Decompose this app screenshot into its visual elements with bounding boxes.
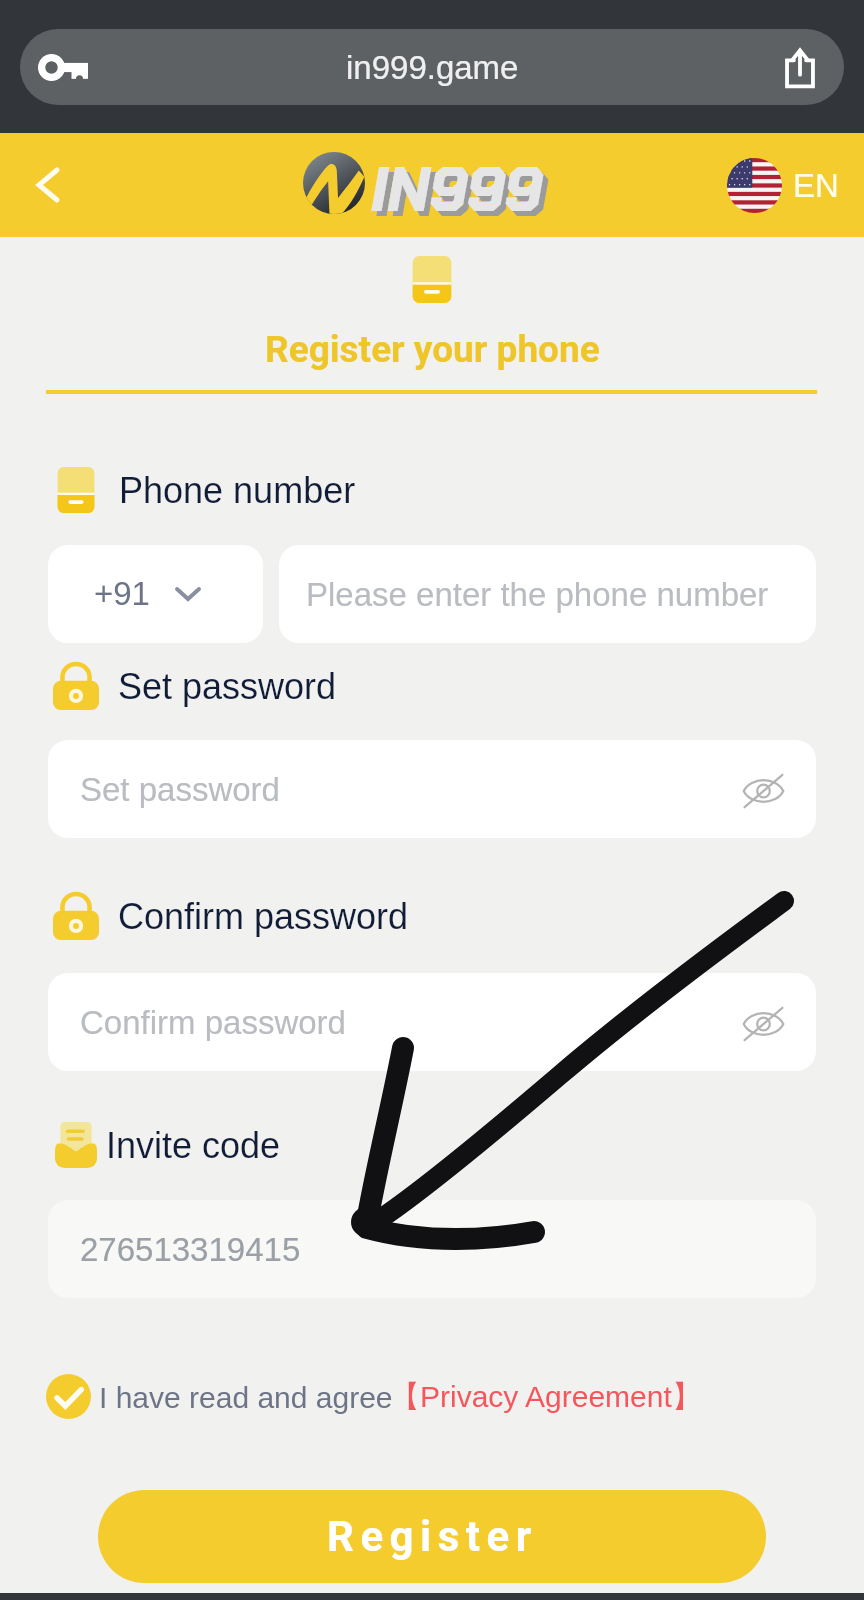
button[interactable]: Show password — [734, 995, 792, 1053]
button[interactable]: Please enter the phone number — [279, 545, 816, 643]
staticText: Please enter the phone number — [306, 576, 769, 613]
staticText: in999.game — [346, 49, 519, 86]
staticText: Confirm password — [118, 896, 409, 936]
staticText: Set password — [80, 771, 280, 808]
button[interactable]: 276513319415 — [48, 1200, 816, 1298]
staticText: 276513319415 — [80, 1231, 301, 1268]
button[interactable]: Register — [98, 1490, 766, 1583]
button[interactable]: +91 — [48, 545, 263, 643]
button[interactable]: Share — [770, 37, 830, 97]
staticText: Register — [327, 1512, 538, 1561]
button[interactable]: I have read and agree — [99, 1381, 393, 1415]
staticText: IN999 — [376, 155, 548, 233]
button[interactable]: Set password — [48, 740, 816, 838]
button[interactable]: Site security — [30, 34, 96, 100]
staticText: Set password — [118, 666, 337, 706]
button[interactable]: 【Privacy Agreement】 — [390, 1378, 702, 1416]
button[interactable]: Show password — [734, 762, 792, 820]
button[interactable]: Back — [14, 151, 82, 219]
staticText: EN — [793, 167, 839, 204]
button[interactable]: Agree to privacy agreement — [46, 1374, 91, 1419]
staticText: Phone number — [119, 470, 356, 510]
staticText: Confirm password — [80, 1004, 346, 1041]
staticText: Invite code — [106, 1125, 281, 1165]
button[interactable]: EN — [727, 158, 839, 213]
staticText: +91 — [94, 575, 150, 612]
button[interactable]: Confirm password — [48, 973, 816, 1071]
staticText: Register your phone — [265, 328, 600, 371]
staticText: IN999 — [371, 150, 543, 228]
